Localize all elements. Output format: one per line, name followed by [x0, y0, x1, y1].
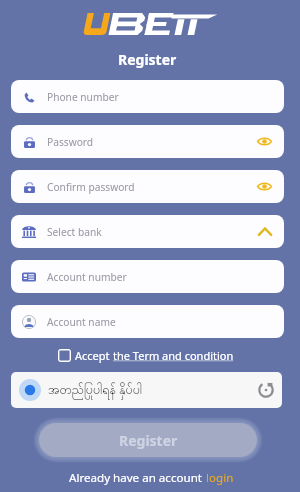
staticText: Register: [118, 50, 177, 69]
button[interactable]: Account number: [11, 260, 284, 293]
staticText: Account number: [47, 270, 127, 284]
staticText: အတည်ပြုပါရန် နှိပ်ပါ: [48, 381, 143, 400]
button[interactable]: Password: [11, 125, 284, 158]
button[interactable]: login: [206, 470, 234, 486]
staticText: Password: [47, 135, 94, 149]
button[interactable]: Accept: [0, 348, 292, 363]
staticText: Phone number: [47, 90, 119, 104]
staticText: Already have an account: [69, 470, 206, 486]
staticText: Confirm password: [47, 180, 135, 194]
staticText: Accept: [75, 348, 113, 363]
button[interactable]: Account name: [11, 305, 284, 338]
button[interactable]: Confirm password: [11, 170, 284, 203]
other: Refresh: [258, 382, 274, 398]
staticText: login: [206, 470, 234, 486]
staticText: Register: [119, 431, 178, 450]
staticText: Select bank: [47, 225, 102, 239]
staticText: the Term and condition: [113, 348, 234, 363]
button[interactable]: Register: [39, 423, 257, 457]
button[interactable]: Select bank: [11, 215, 284, 248]
button[interactable]: Phone number: [11, 80, 284, 113]
staticText: Account name: [47, 315, 116, 329]
button[interactable]: အတည်ပြုပါရန် နှိပ်ပါ: [11, 372, 282, 408]
